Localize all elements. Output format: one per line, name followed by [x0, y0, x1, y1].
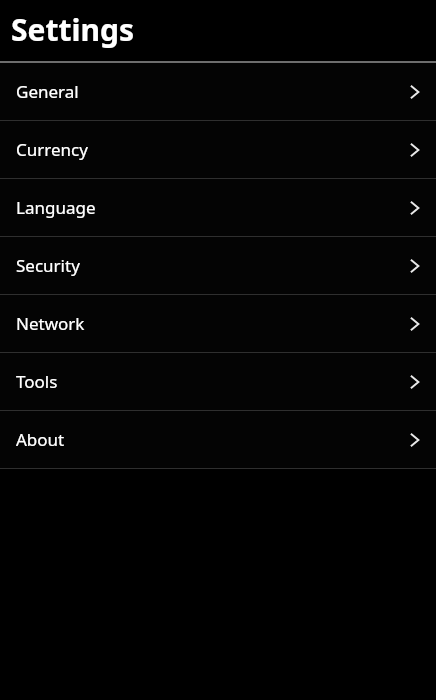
button[interactable]: General: [0, 63, 436, 120]
other: Open: [408, 316, 422, 332]
other: Open: [408, 432, 422, 448]
other: Open: [408, 258, 422, 274]
staticText: Security: [16, 254, 80, 277]
button[interactable]: About: [0, 411, 436, 468]
staticText: Settings: [11, 9, 134, 50]
button[interactable]: Security: [0, 237, 436, 294]
staticText: About: [16, 428, 65, 451]
other: Open: [408, 142, 422, 158]
other: Open: [408, 84, 422, 100]
staticText: Currency: [16, 138, 88, 161]
other: Open: [408, 200, 422, 216]
staticText: Language: [16, 196, 96, 219]
other: Open: [408, 374, 422, 390]
button[interactable]: Language: [0, 179, 436, 236]
staticText: General: [16, 80, 79, 103]
button[interactable]: Tools: [0, 353, 436, 410]
button[interactable]: Currency: [0, 121, 436, 178]
staticText: Network: [16, 312, 85, 335]
staticText: Tools: [16, 370, 58, 393]
button[interactable]: Network: [0, 295, 436, 352]
